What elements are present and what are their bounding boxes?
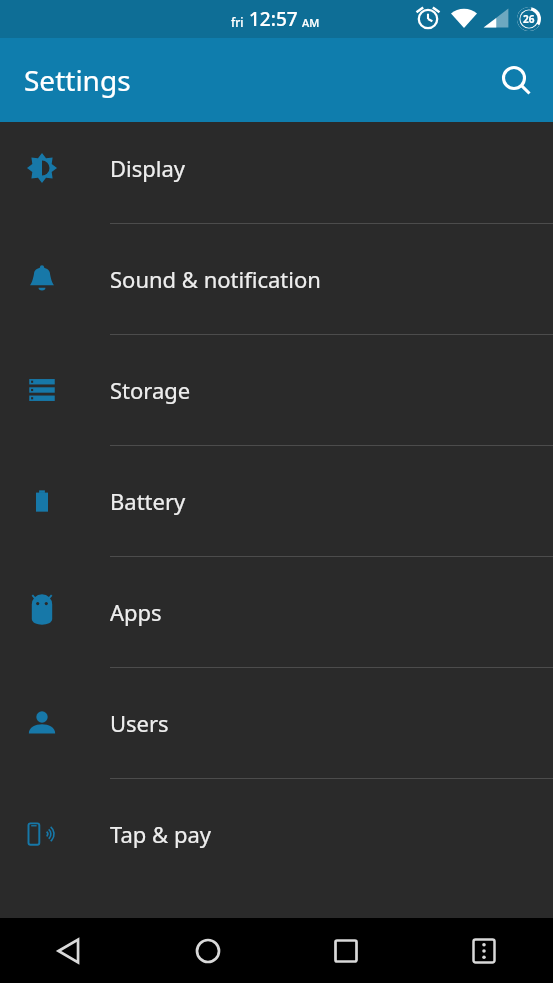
button[interactable]: Home bbox=[0, 1, 553, 112]
staticText: AM bbox=[302, 15, 320, 30]
button[interactable]: Display bbox=[0, 112, 553, 223]
button[interactable]: Menu bbox=[415, 918, 553, 983]
button[interactable]: Home bbox=[139, 918, 277, 983]
button[interactable]: Recent apps bbox=[277, 918, 415, 983]
button[interactable]: Users bbox=[0, 667, 553, 778]
button[interactable]: Apps bbox=[0, 556, 553, 667]
staticText: Tap & pay bbox=[110, 819, 211, 849]
staticText: Battery bbox=[110, 486, 186, 516]
staticText: 26 bbox=[523, 12, 535, 26]
staticText: Storage bbox=[110, 375, 191, 405]
button[interactable]: Tap & pay bbox=[0, 778, 553, 889]
staticText: fri bbox=[231, 14, 244, 30]
button[interactable]: Back bbox=[0, 918, 139, 983]
button[interactable]: Sound & notification bbox=[0, 223, 553, 334]
staticText: Apps bbox=[110, 597, 162, 627]
button[interactable]: Search bbox=[491, 56, 539, 104]
staticText: Settings bbox=[24, 61, 131, 99]
staticText: 12:57 bbox=[249, 6, 298, 32]
button[interactable]: Battery bbox=[0, 445, 553, 556]
button[interactable]: Storage bbox=[0, 334, 553, 445]
staticText: Sound & notification bbox=[110, 264, 321, 294]
staticText: Users bbox=[110, 708, 169, 738]
staticText: Display bbox=[110, 153, 186, 183]
